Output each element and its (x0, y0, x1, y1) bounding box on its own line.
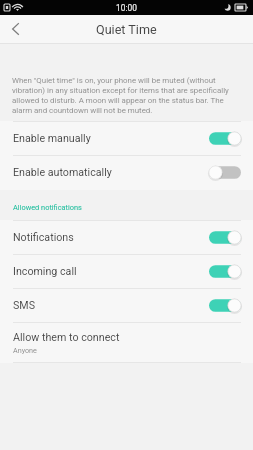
button[interactable]: Enable automatically (0, 155, 253, 190)
staticText: Enable manually (13, 132, 91, 145)
staticText: Quiet Time (96, 22, 157, 37)
staticText: Enable automatically (13, 166, 112, 179)
button[interactable]: Incoming call (0, 254, 253, 288)
staticText: SMS (13, 299, 36, 312)
staticText: Incoming call (13, 265, 77, 278)
button[interactable]: Enable manually (0, 121, 253, 155)
button[interactable]: SMS (0, 288, 253, 322)
staticText: Allow them to connect (13, 331, 120, 344)
button[interactable]: Notifications (0, 220, 253, 254)
button[interactable]: Back (0, 15, 31, 44)
staticText: Anyone (13, 346, 37, 354)
staticText: 10:00 (116, 3, 137, 13)
staticText: Allowed notifications (13, 203, 82, 212)
staticText: When "Quiet time" is on, your phone will… (12, 76, 242, 115)
staticText: Notifications (13, 231, 74, 244)
button[interactable]: Allow them to connect (0, 322, 253, 363)
